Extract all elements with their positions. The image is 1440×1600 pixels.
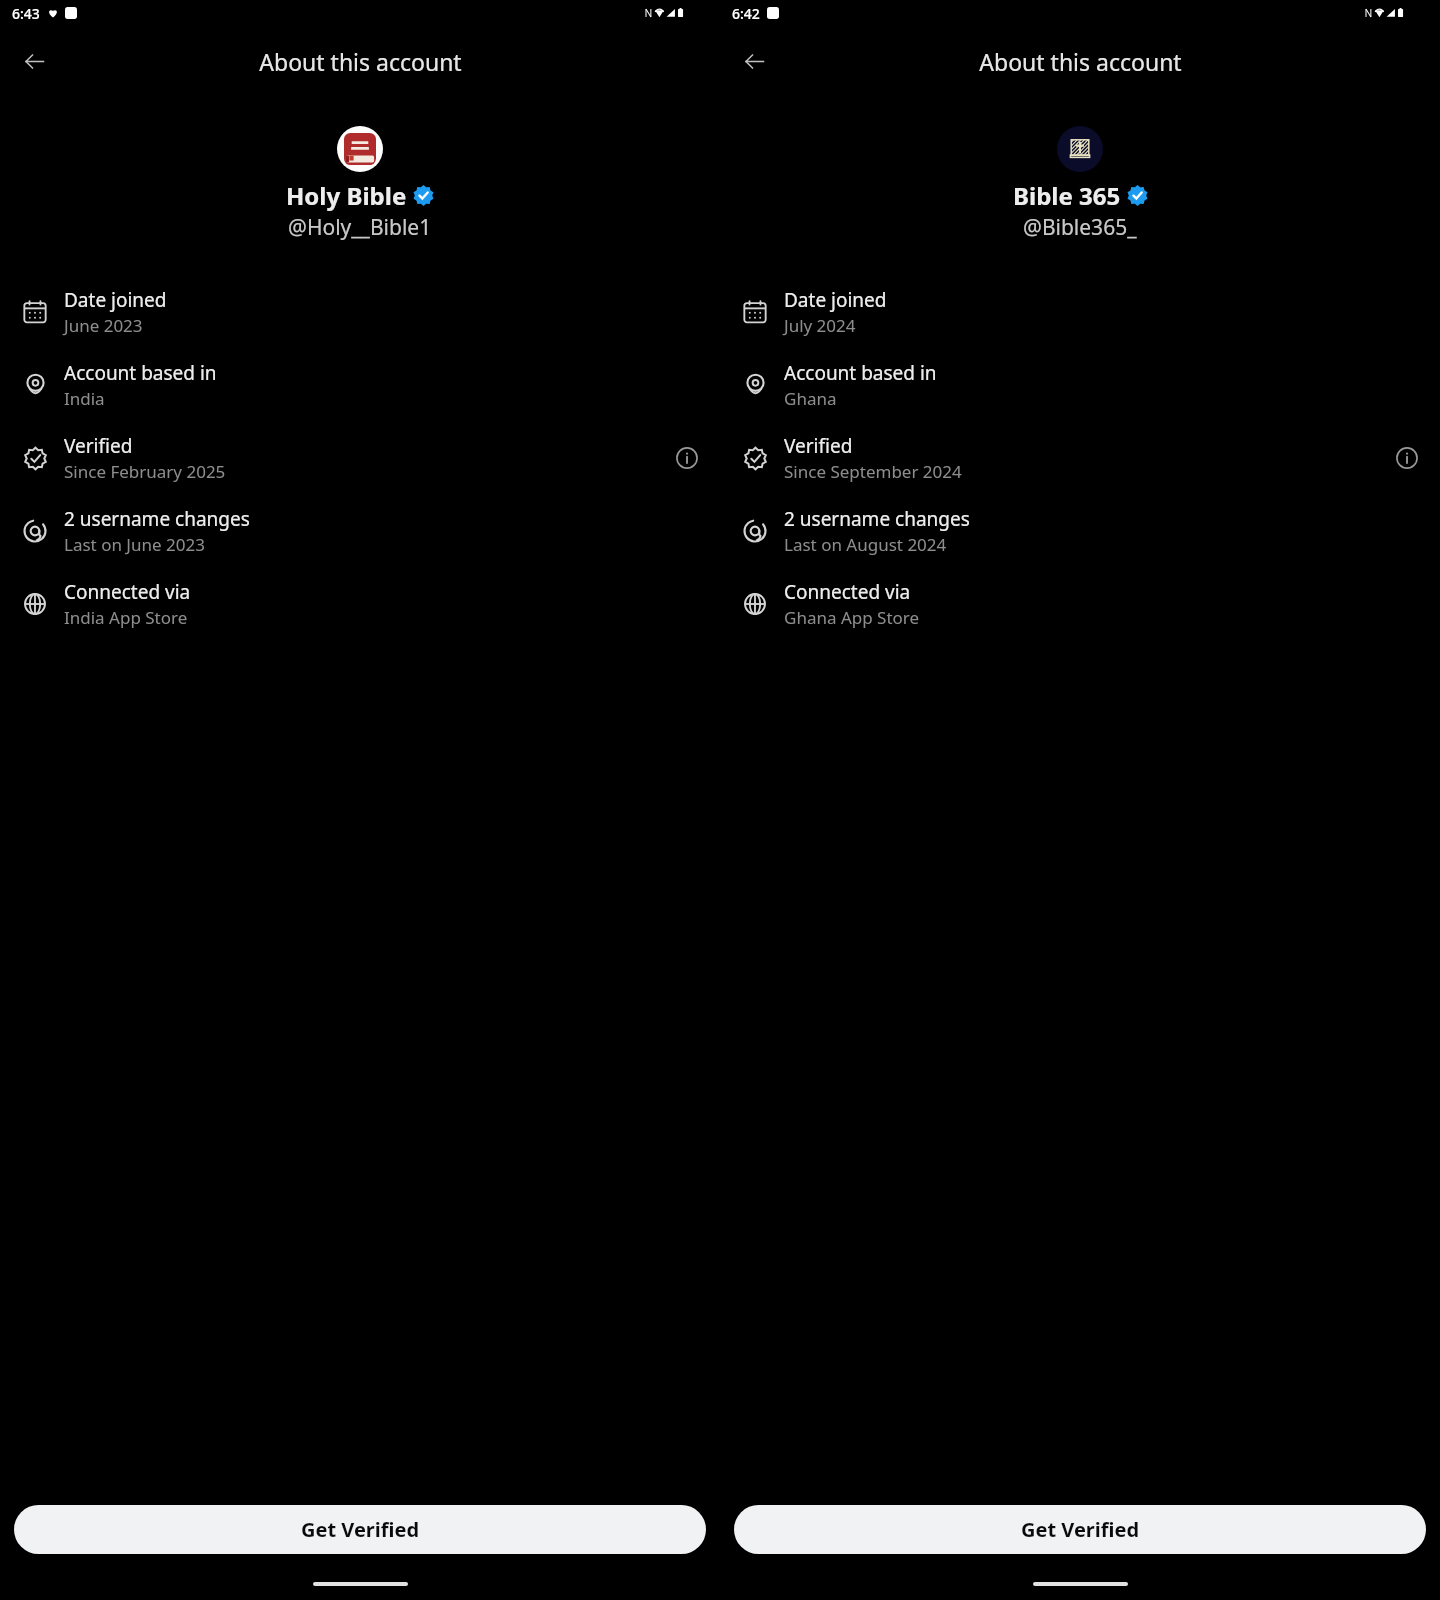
staticText: Account based in	[784, 360, 937, 386]
staticText: Verified	[64, 433, 133, 459]
button[interactable]: Get Verified	[14, 1505, 706, 1554]
staticText: June 2023	[64, 314, 143, 337]
staticText: @Holy__Bible1	[288, 213, 432, 242]
staticText: Verified	[784, 433, 853, 459]
button[interactable]: Back	[730, 37, 778, 85]
staticText: Since September 2024	[784, 460, 962, 483]
button[interactable]: Account based in	[720, 353, 1440, 417]
staticText: Ghana	[784, 387, 837, 410]
button[interactable]: Get Verified	[734, 1505, 1426, 1554]
staticText: 2 username changes	[784, 506, 970, 532]
staticText: 2 username changes	[64, 506, 250, 532]
button[interactable]: Connected via	[0, 572, 720, 636]
staticText: Date joined	[784, 287, 887, 313]
staticText: Get Verified	[301, 1516, 420, 1543]
button[interactable]: 2 username changes	[720, 499, 1440, 563]
staticText: Date joined	[64, 287, 167, 313]
staticText: India App Store	[64, 606, 188, 629]
button[interactable]: More info about verification	[1390, 441, 1424, 475]
button[interactable]: Date joined	[720, 280, 1440, 344]
staticText: About this account	[259, 46, 462, 77]
staticText: @Bible365_	[1023, 213, 1137, 242]
staticText: Ghana App Store	[784, 606, 920, 629]
staticText: India	[64, 387, 105, 410]
button[interactable]: Verified	[720, 426, 1440, 490]
staticText: Get Verified	[1021, 1516, 1140, 1543]
staticText: Holy Bible	[286, 179, 407, 212]
staticText: Last on June 2023	[64, 533, 205, 556]
staticText: Since February 2025	[64, 460, 226, 483]
button[interactable]: 2 username changes	[0, 499, 720, 563]
staticText: About this account	[979, 46, 1182, 77]
button[interactable]: Verified	[0, 426, 720, 490]
staticText: 6:42	[732, 4, 760, 23]
staticText: Connected via	[64, 579, 191, 605]
staticText: Last on August 2024	[784, 533, 947, 556]
staticText: 6:43	[12, 4, 40, 23]
button[interactable]: More info about verification	[670, 441, 704, 475]
staticText: July 2024	[784, 314, 856, 337]
staticText: Account based in	[64, 360, 217, 386]
button[interactable]: Account based in	[0, 353, 720, 417]
button[interactable]: Connected via	[720, 572, 1440, 636]
staticText: Bible 365	[1013, 179, 1121, 212]
button[interactable]: Back	[10, 37, 58, 85]
staticText: Connected via	[784, 579, 911, 605]
button[interactable]: Date joined	[0, 280, 720, 344]
